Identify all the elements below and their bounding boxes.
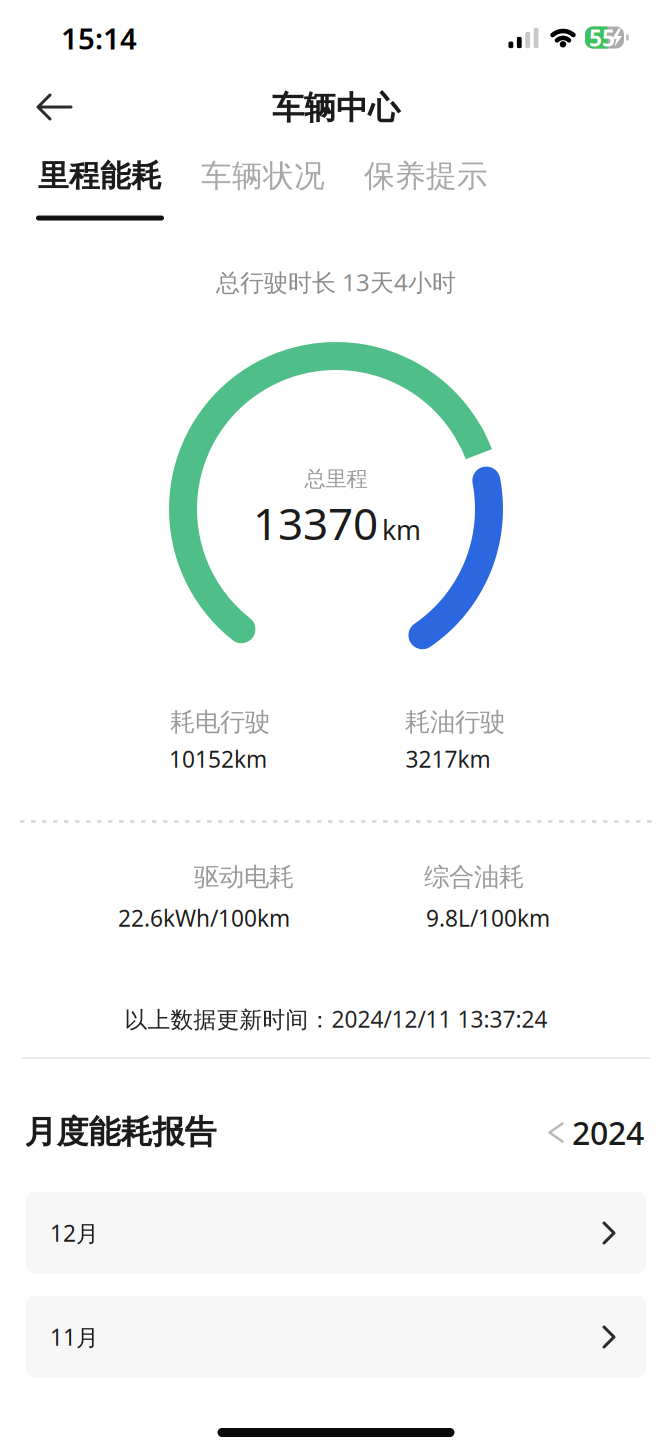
staticText: 11月 [50,1322,99,1352]
button[interactable]: 2024 [549,1111,644,1154]
staticText: 以上数据更新时间：2024/12/11 13:37:24 [124,1004,547,1034]
button[interactable]: 保养提示 [364,157,488,195]
staticText: 总行驶时长 13天4小时 [216,266,456,298]
staticText: 总里程 [304,466,367,492]
staticText: 12月 [50,1218,99,1248]
staticText: 2024 [572,1111,644,1154]
staticText: 里程能耗 [38,157,162,195]
staticText: 耗电行驶 [170,706,270,737]
staticText: 耗油行驶 [405,706,505,737]
button[interactable]: 11月 [26,1296,646,1378]
staticText: 55 [589,23,615,53]
staticText: 9.8L/100km [426,903,550,933]
staticText: 车辆中心 [272,88,400,128]
button[interactable]: Back [0,0,672,1454]
staticText: 保养提示 [364,157,488,195]
button[interactable]: 12月 [26,1192,646,1274]
staticText: 驱动电耗 [194,861,294,892]
staticText: 13370 [253,494,378,552]
button[interactable]: 里程能耗 [38,157,162,195]
staticText: 综合油耗 [424,861,524,892]
button[interactable]: 车辆状况 [201,157,325,195]
staticText: 22.6kWh/100km [118,903,290,933]
staticText: 月度能耗报告 [24,1112,216,1152]
staticText: km [382,512,421,547]
staticText: 3217km [405,744,490,774]
staticText: 10152km [169,744,267,774]
staticText: 车辆状况 [201,157,325,195]
staticText: 15:14 [61,18,137,57]
